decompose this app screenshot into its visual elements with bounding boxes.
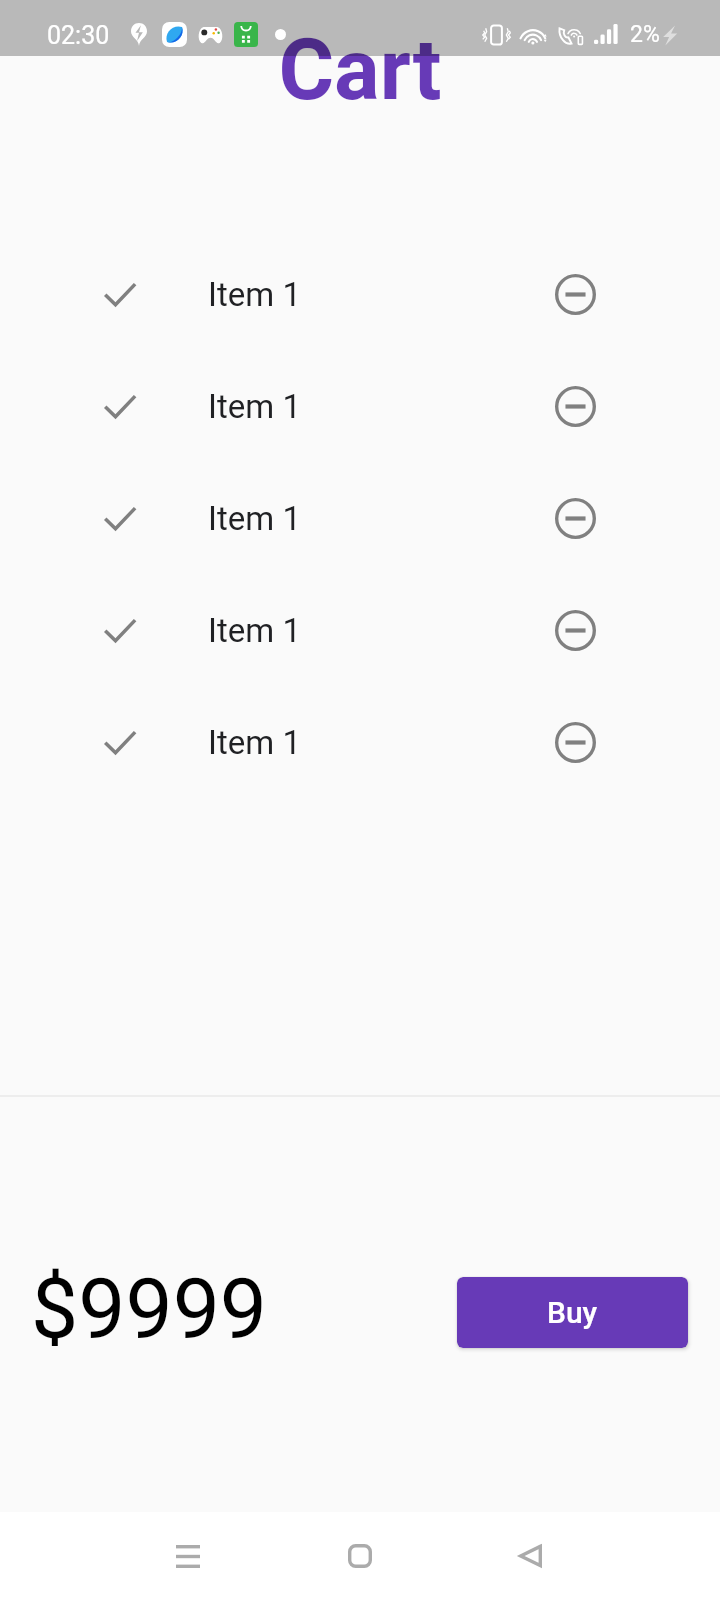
button[interactable]: Recents: [144, 1512, 232, 1600]
button[interactable]: Remove item: [539, 482, 611, 554]
button[interactable]: Selected: [84, 370, 156, 442]
button[interactable]: Remove item: [539, 706, 611, 778]
button[interactable]: Selected: [84, 482, 156, 554]
staticText: Buy: [547, 1295, 598, 1330]
button[interactable]: Selected: [0, 350, 720, 462]
button[interactable]: Selected: [0, 462, 720, 574]
staticText: Cart: [278, 20, 442, 120]
button[interactable]: Remove item: [539, 370, 611, 442]
staticText: Item 1: [208, 723, 301, 762]
button[interactable]: Selected: [84, 594, 156, 666]
button[interactable]: Selected: [0, 238, 720, 350]
button[interactable]: Back: [486, 1512, 574, 1600]
staticText: $9999: [31, 1260, 268, 1358]
staticText: Item 1: [208, 275, 301, 314]
button[interactable]: Remove item: [539, 594, 611, 666]
button[interactable]: Buy: [457, 1277, 688, 1348]
button[interactable]: Selected: [84, 258, 156, 330]
staticText: Item 1: [208, 387, 301, 426]
staticText: Item 1: [208, 611, 301, 650]
staticText: Item 1: [208, 499, 301, 538]
button[interactable]: Selected: [0, 686, 720, 798]
button[interactable]: Selected: [0, 574, 720, 686]
button[interactable]: Selected: [84, 706, 156, 778]
staticText: 02:30: [47, 21, 110, 50]
button[interactable]: Home: [316, 1512, 404, 1600]
staticText: 2%: [630, 21, 660, 48]
button[interactable]: Remove item: [539, 258, 611, 330]
